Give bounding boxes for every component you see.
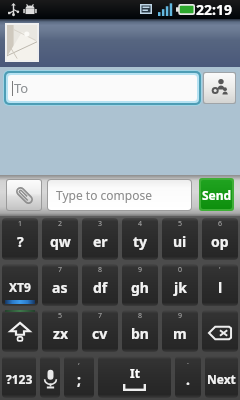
button[interactable]: 4	[122, 218, 158, 260]
staticText: op	[211, 232, 229, 251]
button[interactable]: .	[175, 356, 201, 398]
button[interactable]: 9	[162, 310, 198, 352]
staticText: 9	[138, 265, 143, 275]
staticText: 7	[58, 265, 63, 275]
button[interactable]: 1	[2, 218, 38, 260]
button[interactable]: 0	[162, 264, 198, 306]
button[interactable]: Next	[205, 356, 238, 398]
button[interactable]: Send	[201, 180, 232, 209]
staticText: 5	[178, 219, 183, 229]
staticText: 3	[98, 219, 103, 229]
button[interactable]: 8	[122, 310, 158, 352]
staticText: ui	[173, 232, 187, 251]
staticText: ?123	[6, 371, 33, 387]
button[interactable]: To	[8, 75, 197, 101]
staticText: gh	[131, 278, 149, 297]
staticText: ;	[77, 370, 81, 389]
button[interactable]: Contact photo	[7, 25, 37, 60]
staticText: ty	[133, 232, 148, 251]
button[interactable]: 3	[82, 218, 118, 260]
staticText: .	[187, 357, 189, 367]
staticText: 1	[18, 219, 23, 229]
staticText: ?	[17, 232, 24, 251]
staticText: as	[52, 278, 68, 297]
staticText: bn	[131, 324, 149, 343]
staticText: df	[93, 278, 108, 297]
staticText: qw	[50, 232, 71, 251]
button[interactable]: '	[202, 264, 238, 306]
staticText: 22:19	[196, 0, 232, 19]
staticText: cv	[92, 324, 108, 343]
button[interactable]: 6	[202, 218, 238, 260]
staticText: Send	[202, 187, 232, 203]
button[interactable]: 5	[42, 310, 78, 352]
staticText: jk	[174, 278, 187, 297]
staticText: 0	[178, 265, 183, 275]
staticText: '	[219, 265, 221, 275]
staticText: ,	[78, 357, 80, 367]
staticText: To	[14, 79, 29, 97]
staticText: 4	[138, 219, 143, 229]
staticText: Next	[207, 371, 236, 387]
staticText: Type to compose	[56, 187, 152, 203]
staticText: 6	[218, 219, 223, 229]
staticText: 9	[178, 311, 183, 321]
staticText: 8	[98, 265, 103, 275]
button[interactable]: 8	[82, 264, 118, 306]
button[interactable]: 7	[42, 264, 78, 306]
button[interactable]: ,	[64, 356, 94, 398]
staticText: 8	[138, 311, 143, 321]
staticText: zx	[53, 324, 68, 343]
button[interactable]	[202, 310, 238, 352]
staticText: 7	[98, 311, 103, 321]
staticText: 5	[58, 311, 63, 321]
button[interactable]: XT9	[2, 264, 38, 306]
staticText: XT9	[9, 279, 31, 295]
button[interactable]: Choose contact	[204, 73, 235, 103]
button[interactable]: 5	[162, 218, 198, 260]
staticText: m	[173, 324, 187, 343]
button[interactable]: It	[98, 356, 171, 398]
staticText: It	[130, 365, 140, 381]
button[interactable]: ?123	[2, 356, 36, 398]
button[interactable]: Type to compose	[48, 180, 191, 210]
button[interactable]	[2, 310, 38, 352]
button[interactable]: 9	[122, 264, 158, 306]
button[interactable]: Attach	[7, 180, 41, 210]
button[interactable]: 7	[82, 310, 118, 352]
button[interactable]	[40, 356, 60, 398]
staticText: .	[186, 370, 190, 389]
button[interactable]: 2	[42, 218, 78, 260]
staticText: 2	[58, 219, 63, 229]
staticText: er	[93, 232, 108, 251]
staticText: l	[218, 278, 223, 297]
